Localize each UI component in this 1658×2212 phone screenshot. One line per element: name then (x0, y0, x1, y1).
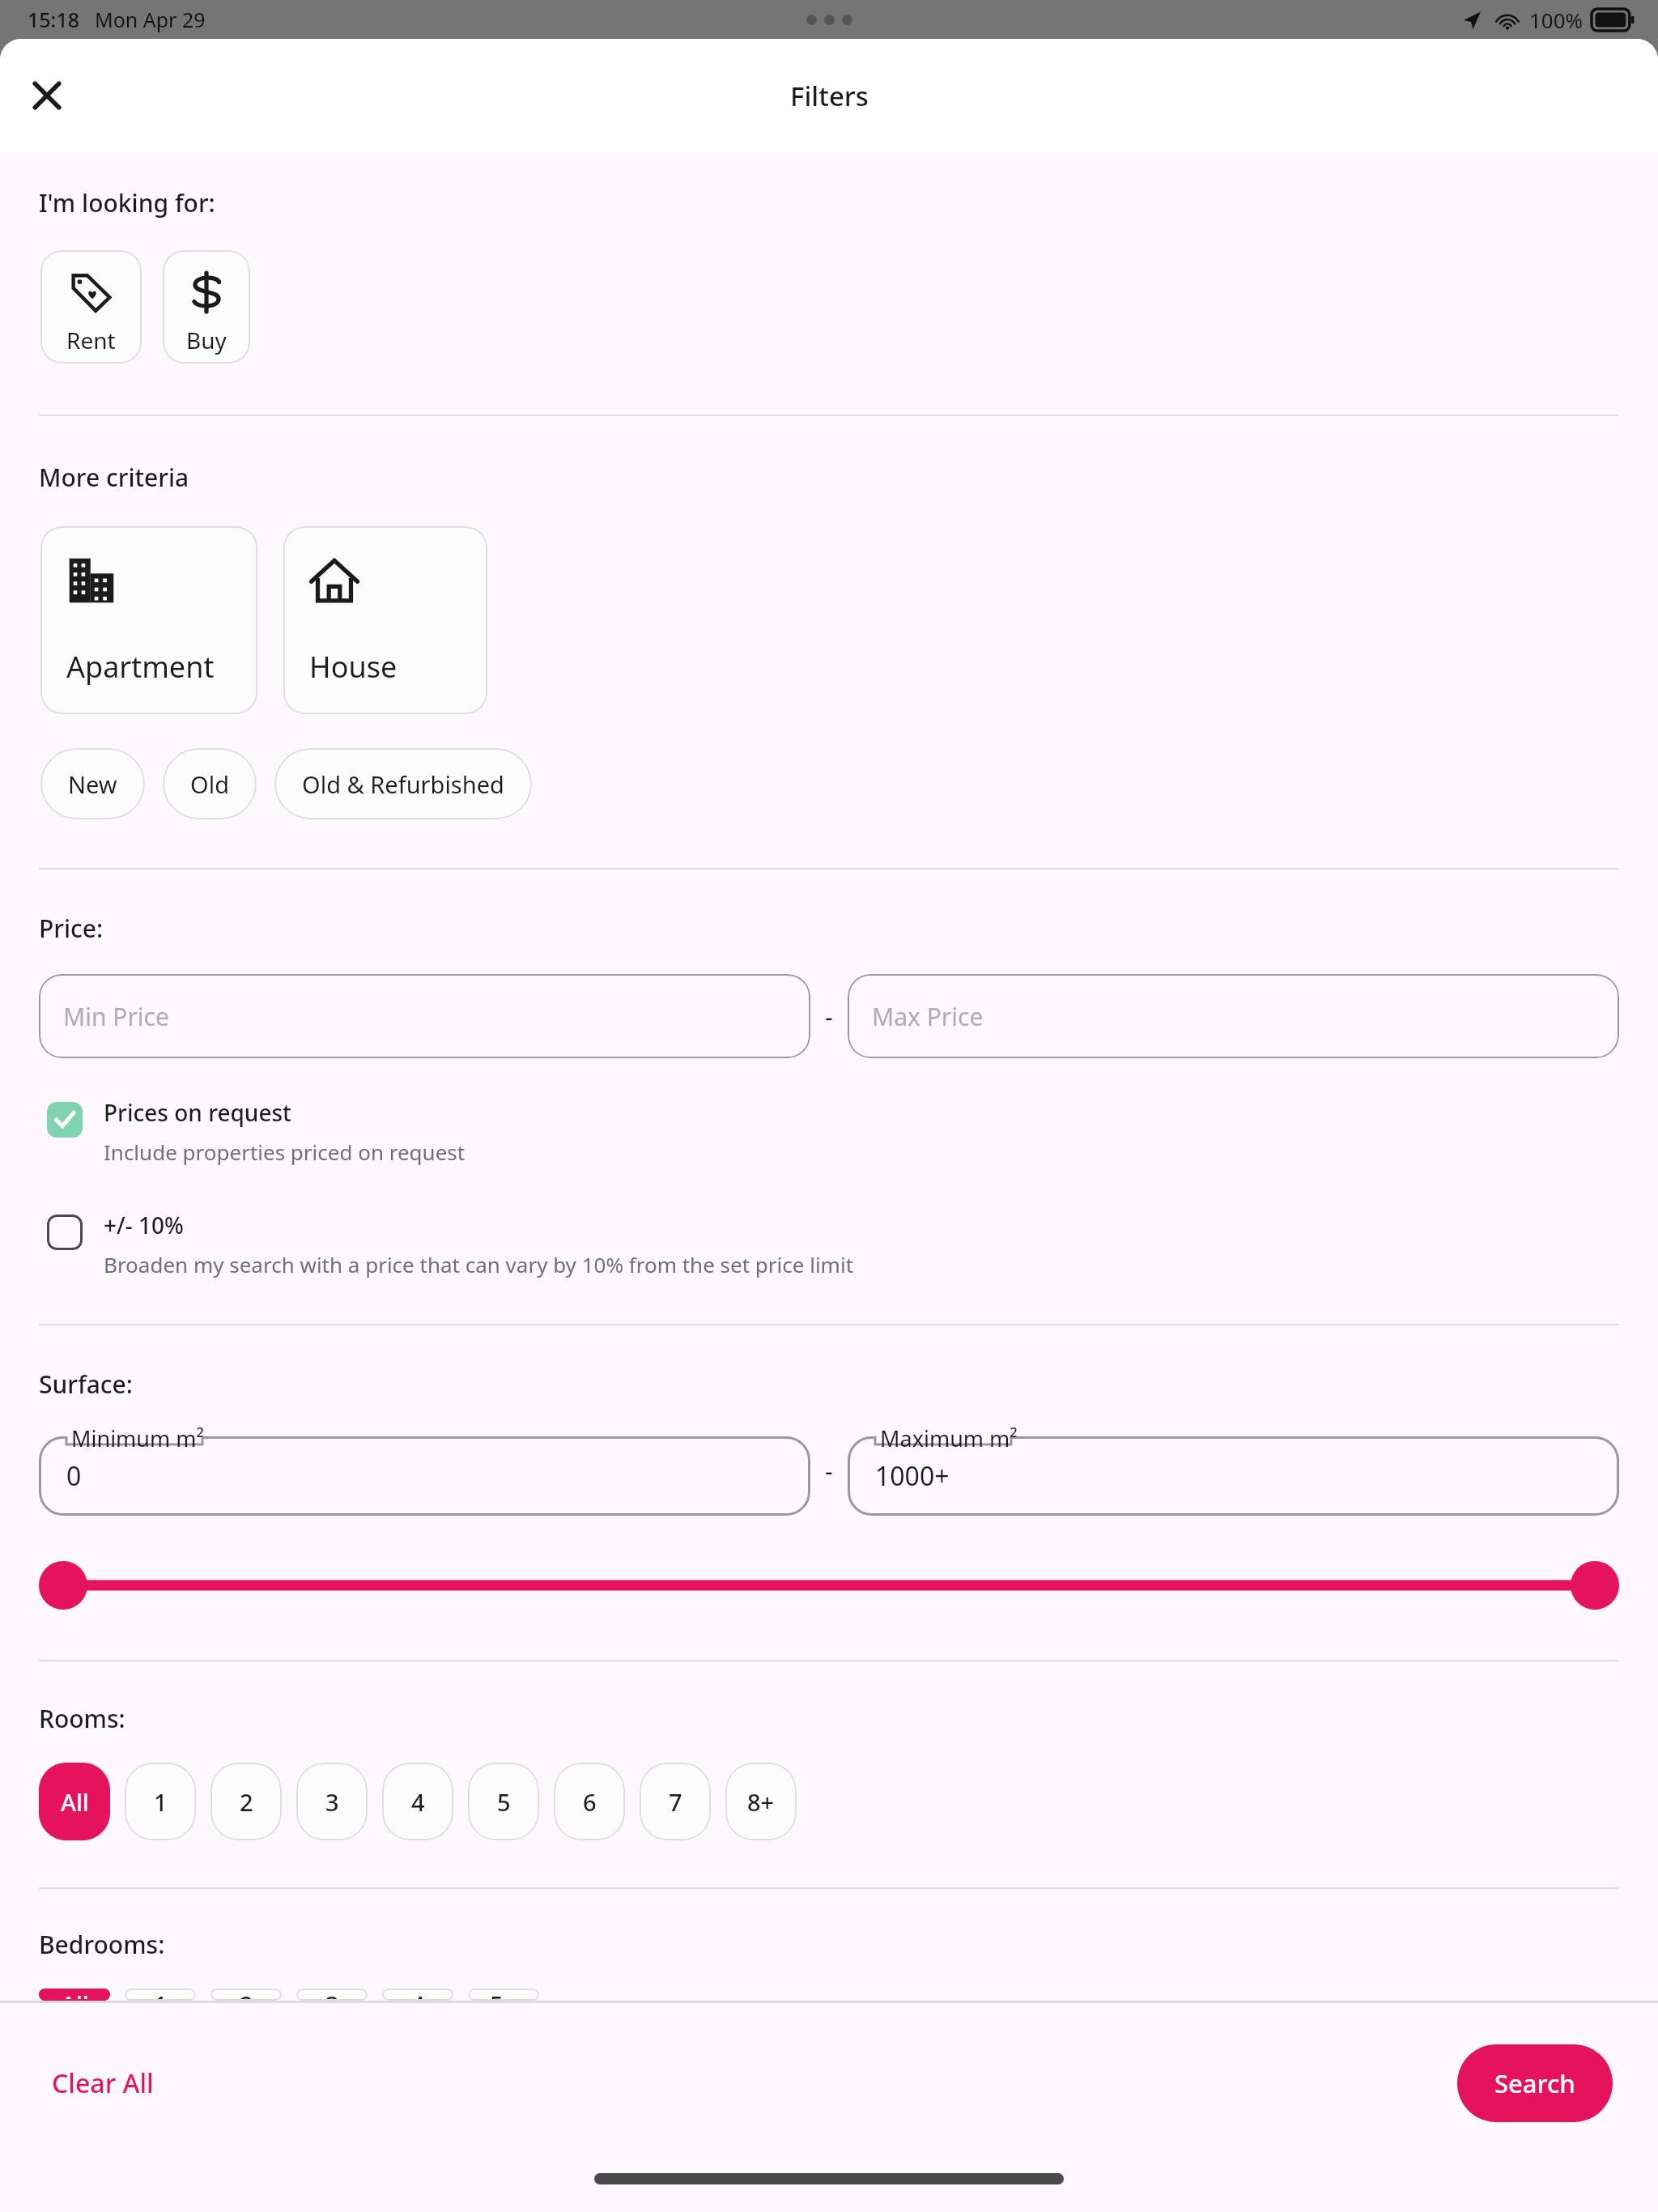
button[interactable]: Apartment (40, 526, 257, 714)
staticText: Mon Apr 29 (95, 6, 206, 33)
staticText: 8+ (747, 1786, 775, 1818)
button[interactable]: 3 (296, 1989, 368, 2001)
button[interactable] (848, 1436, 1619, 1516)
button[interactable]: 7 (640, 1763, 711, 1840)
staticText: I'm looking for: (39, 186, 215, 219)
staticText: Prices on request (104, 1097, 291, 1128)
button[interactable]: +/- 10% (0, 1210, 1658, 1278)
staticText: 2 (240, 1786, 253, 1818)
button[interactable]: 4 (382, 1989, 453, 2001)
staticText: Broaden my search with a price that can … (104, 1250, 854, 1278)
button[interactable]: 1 (125, 1763, 196, 1840)
button[interactable]: New (40, 748, 145, 819)
button[interactable]: Close (15, 63, 79, 128)
staticText: Price: (39, 912, 104, 945)
staticText: Bedrooms: (39, 1928, 165, 1961)
staticText: House (309, 647, 397, 687)
staticText: Include properties priced on request (104, 1138, 466, 1166)
staticText: 2 (240, 1989, 253, 2001)
staticText: 7 (669, 1786, 682, 1818)
button[interactable]: Old (163, 748, 257, 819)
button[interactable]: Min Price (39, 974, 810, 1058)
button[interactable]: 8+ (725, 1763, 797, 1840)
staticText: Apartment (66, 647, 215, 687)
staticText: Surface: (39, 1368, 133, 1401)
staticText: Min Price (63, 1000, 169, 1033)
staticText: All (61, 1989, 89, 2001)
button[interactable]: Rent (40, 250, 142, 364)
staticText: - (825, 1454, 833, 1487)
button[interactable]: Max Price (848, 974, 1619, 1058)
staticText: Old (190, 768, 229, 800)
button[interactable]: 5 (468, 1763, 539, 1840)
button[interactable]: Search (1457, 2044, 1613, 2122)
button[interactable]: 1 (125, 1989, 196, 2001)
staticText: 4 (411, 1989, 425, 2001)
button[interactable]: Buy (163, 250, 250, 364)
staticText: 3 (325, 1786, 339, 1818)
staticText: 4 (411, 1786, 425, 1818)
button[interactable]: Surface range slider (0, 1553, 1658, 1618)
staticText: Maximum m² (880, 1423, 1018, 1453)
button[interactable]: 5+ (468, 1989, 539, 2001)
staticText: Minimum m² (71, 1423, 204, 1453)
staticText: Old & Refurbished (302, 768, 504, 800)
button[interactable]: 2 (210, 1763, 282, 1840)
button[interactable]: 3 (296, 1763, 368, 1840)
staticText: Clear All (52, 2065, 154, 2101)
staticText: Filters (790, 78, 869, 114)
staticText: 1000+ (875, 1458, 950, 1494)
button[interactable]: 2 (210, 1989, 282, 2001)
staticText: +/- 10% (104, 1210, 184, 1240)
button[interactable] (39, 1436, 810, 1516)
staticText: 1 (154, 1989, 168, 2001)
button[interactable]: 6 (554, 1763, 625, 1840)
staticText: 100% (1529, 6, 1584, 34)
button[interactable]: House (283, 526, 487, 714)
button[interactable]: Prices on request (0, 1097, 1658, 1166)
staticText: 5 (497, 1786, 511, 1818)
staticText: New (68, 768, 117, 800)
staticText: 1 (154, 1786, 168, 1818)
staticText: Search (1494, 2066, 1575, 2100)
staticText: 5+ (490, 1989, 517, 2001)
button[interactable]: Old & Refurbished (274, 748, 532, 819)
staticText: 15:18 (28, 6, 80, 33)
staticText: 0 (66, 1458, 82, 1494)
staticText: Rooms: (39, 1702, 125, 1735)
button[interactable]: All (39, 1763, 110, 1840)
button[interactable]: Clear All (29, 2049, 176, 2117)
staticText: All (61, 1786, 89, 1818)
staticText: Buy (186, 325, 227, 355)
staticText: - (825, 1000, 833, 1033)
staticText: More criteria (39, 461, 189, 494)
button[interactable]: 4 (382, 1763, 453, 1840)
staticText: Max Price (872, 1000, 984, 1033)
staticText: Rent (66, 325, 116, 355)
button[interactable]: All (39, 1989, 110, 2001)
staticText: 6 (583, 1786, 597, 1818)
staticText: 3 (325, 1989, 339, 2001)
